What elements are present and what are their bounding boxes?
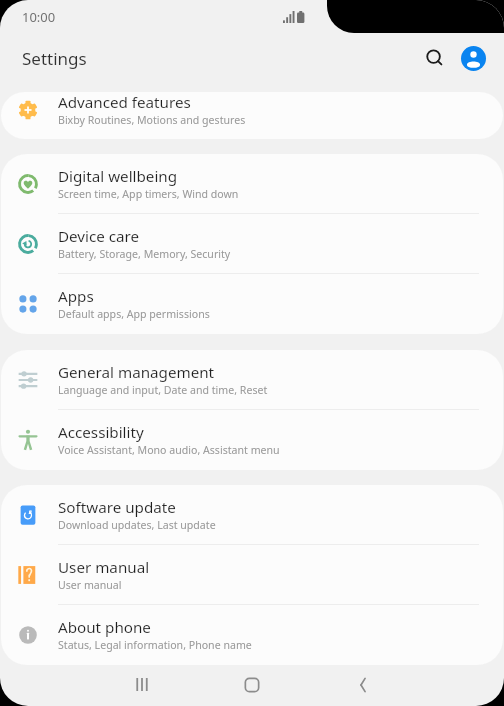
button[interactable]: About phone [1,605,503,665]
staticText: Voice Assistant, Mono audio, Assistant m… [58,443,280,457]
button[interactable]: Advanced features [1,92,503,139]
staticText: About phone [58,617,151,638]
staticText: General management [58,362,215,383]
staticText: Bixby Routines, Motions and gestures [58,113,246,127]
staticText: Digital wellbeing [58,166,178,187]
staticText: Advanced features [58,92,191,113]
staticText: Accessibility [58,422,144,443]
staticText: Screen time, App timers, Wind down [58,187,239,201]
button[interactable]: Recent apps [112,663,172,706]
staticText: Battery, Storage, Memory, Security [58,247,231,261]
button[interactable]: Accessibility [1,410,503,470]
staticText: 10:00 [22,8,56,26]
staticText: Status, Legal information, Phone name [58,638,252,652]
button[interactable]: Software update [1,485,503,545]
staticText: Default apps, App permissions [58,307,210,321]
button[interactable]: Home [222,663,282,706]
staticText: Device care [58,226,140,247]
button[interactable]: User manual [1,545,503,605]
staticText: Download updates, Last update [58,518,216,532]
staticText: Language and input, Date and time, Reset [58,383,268,397]
button[interactable]: Apps [1,274,503,334]
staticText: User manual [58,578,122,592]
button[interactable]: Search [416,40,452,76]
button[interactable]: Device care [1,214,503,274]
staticText: Settings [22,47,87,70]
button[interactable]: General management [1,350,503,410]
button[interactable]: Back [332,663,392,706]
staticText: Apps [58,286,94,307]
staticText: Software update [58,497,176,518]
button[interactable]: Digital wellbeing [1,154,503,214]
button[interactable]: Account [456,41,490,75]
staticText: User manual [58,557,150,578]
